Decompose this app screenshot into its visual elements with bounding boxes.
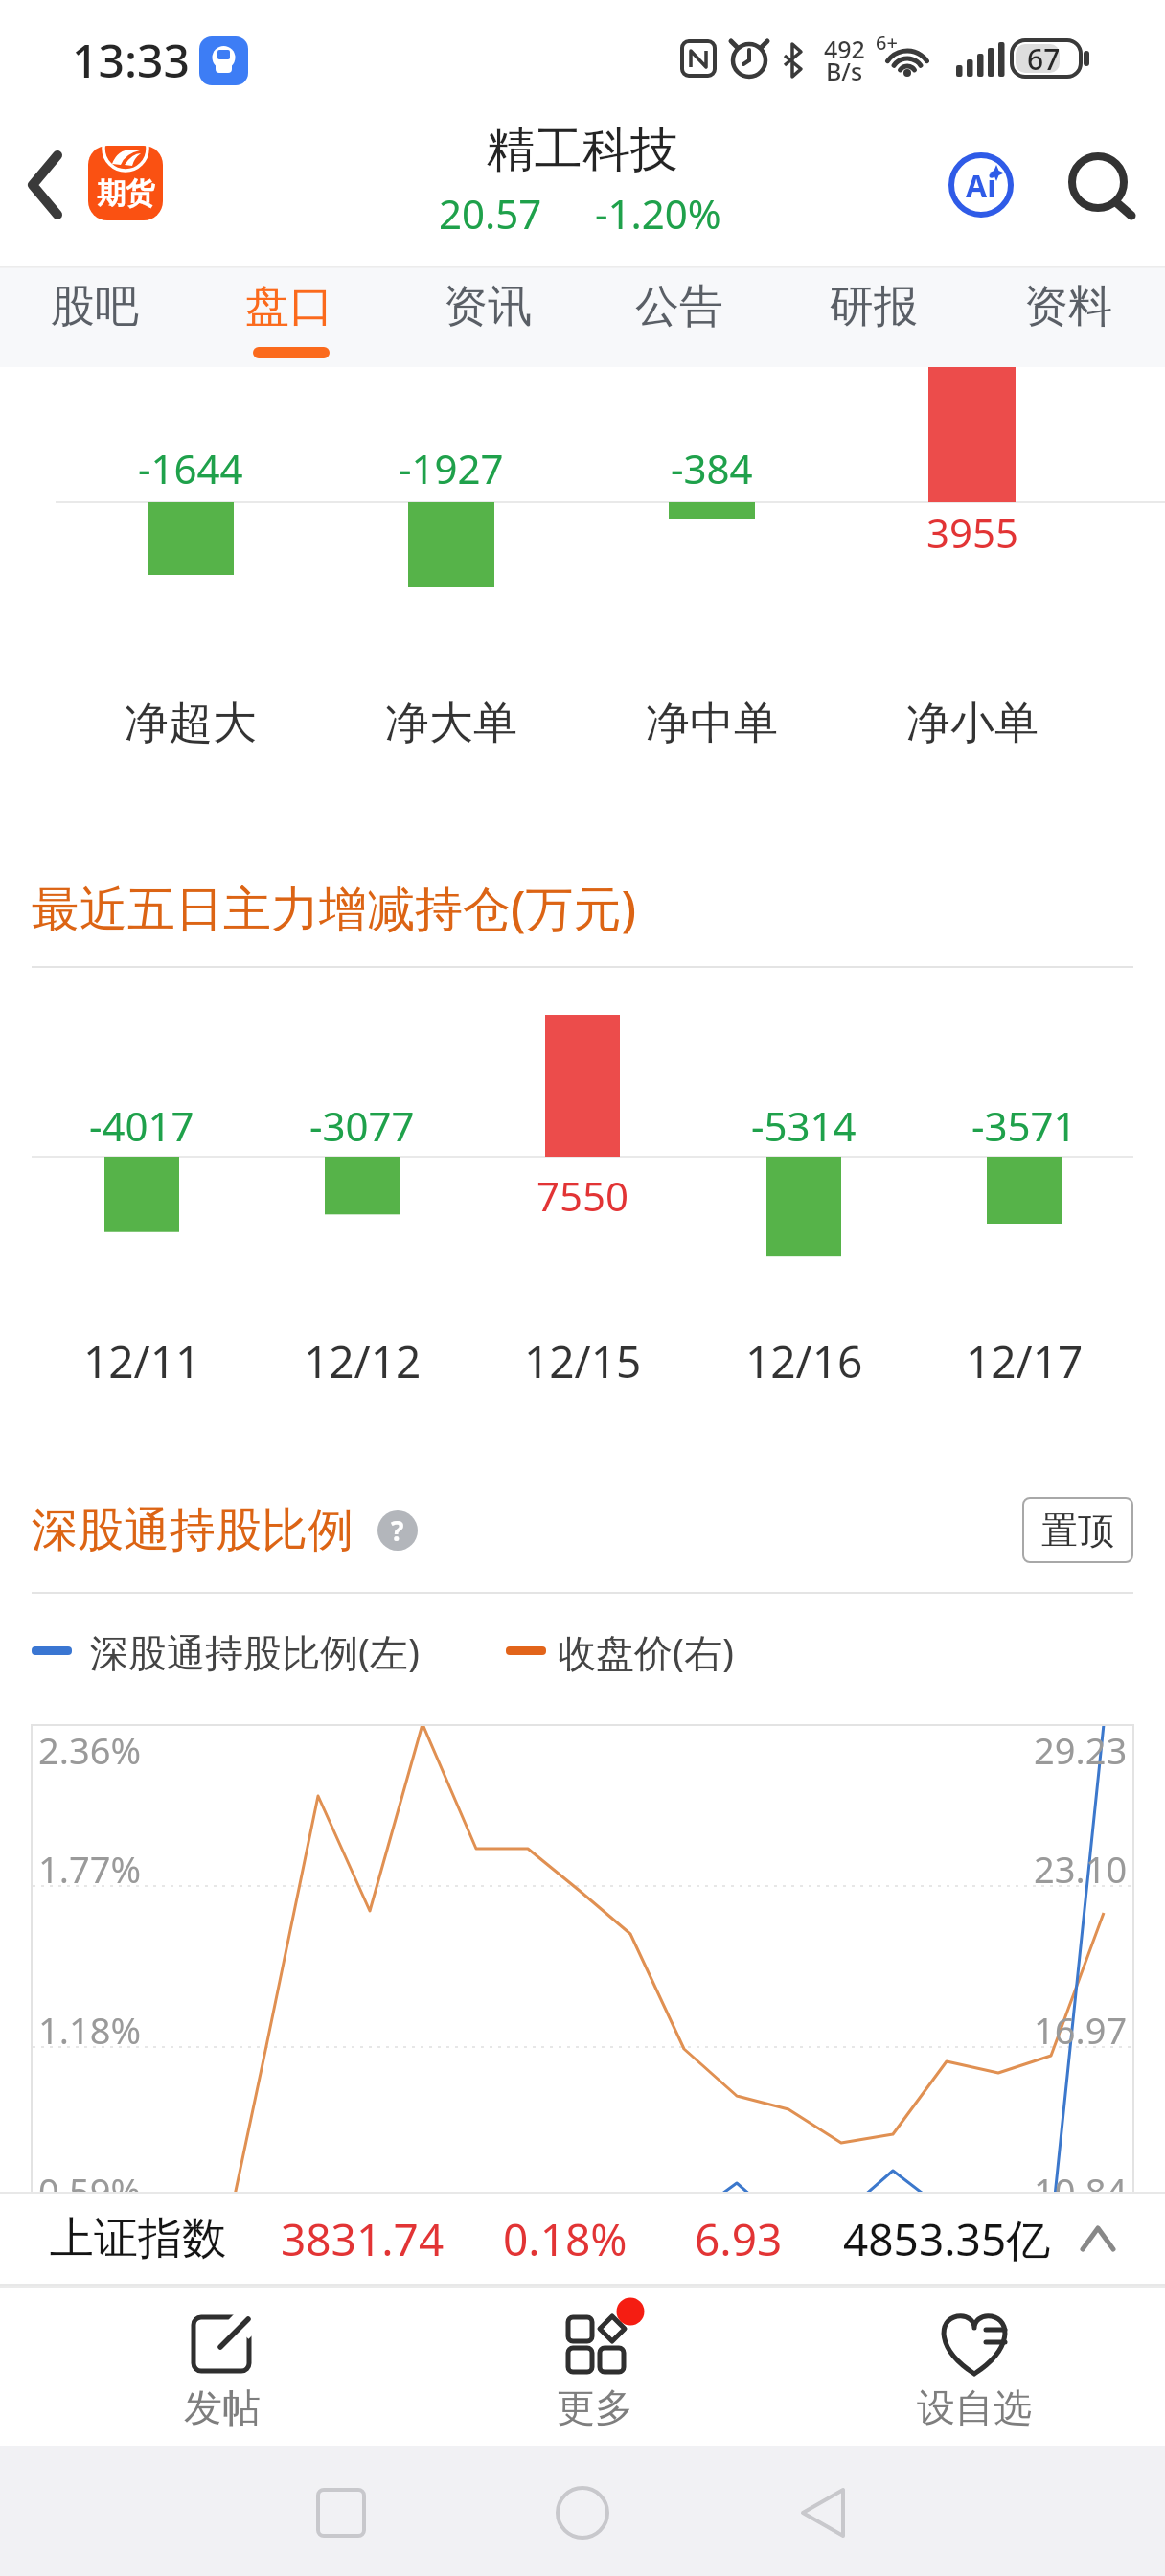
staticText: 净中单 <box>646 696 778 751</box>
staticText: 公告 <box>635 279 723 334</box>
button[interactable] <box>293 2465 389 2561</box>
staticText: -1927 <box>399 441 504 495</box>
staticText: 4853.35亿 <box>843 2209 1051 2269</box>
staticText: -384 <box>671 441 753 495</box>
staticText: 期货 <box>97 175 154 212</box>
staticText: 6.93 <box>695 2209 783 2269</box>
staticText: 置顶 <box>1041 1507 1114 1553</box>
staticText: ? <box>391 1512 404 1549</box>
staticText: 13:33 <box>72 29 190 91</box>
staticText: 净小单 <box>906 696 1039 751</box>
staticText: 深股通持股比例(左) <box>90 1625 420 1678</box>
staticText: 7550 <box>537 1168 629 1223</box>
staticText: -4017 <box>89 1098 194 1153</box>
button[interactable] <box>774 2465 870 2561</box>
staticText: 更多 <box>557 2383 633 2431</box>
staticText: 1.77% <box>38 1844 141 1894</box>
staticText: 研报 <box>830 279 918 334</box>
staticText: 收盘价(右) <box>558 1625 734 1678</box>
button[interactable]: 研报 <box>788 263 960 351</box>
staticText: 资料 <box>1024 279 1112 334</box>
staticText: 发帖 <box>184 2383 261 2431</box>
button[interactable]: 公告 <box>593 263 765 351</box>
staticText: 1.18% <box>38 2005 141 2055</box>
staticText: 最近五日主力增减持仓(万元) <box>32 875 637 940</box>
button[interactable]: 资讯 <box>401 263 574 351</box>
staticText: 67 <box>1027 39 1061 79</box>
staticText: -5314 <box>751 1098 857 1153</box>
staticText: 设自选 <box>917 2383 1032 2431</box>
staticText: 深股通持股比例 <box>32 1502 354 1559</box>
staticText: 2.36% <box>38 1725 141 1775</box>
staticText: 29.23 <box>1034 1725 1128 1775</box>
button[interactable]: 盘口 <box>203 263 376 351</box>
button[interactable]: 股吧 <box>9 263 181 351</box>
button[interactable] <box>535 2465 630 2561</box>
staticText: 盘口 <box>245 279 333 334</box>
staticText: 股吧 <box>51 279 139 334</box>
staticText: 3955 <box>926 505 1019 560</box>
staticText: 20.57 <box>439 186 542 241</box>
button[interactable]: 发帖 <box>126 2293 318 2442</box>
staticText: 16.97 <box>1034 2005 1128 2055</box>
staticText: -1.20% <box>595 186 721 241</box>
staticText: B/s <box>826 55 863 87</box>
staticText: 净超大 <box>125 696 257 751</box>
button[interactable]: Ai <box>948 155 1015 217</box>
staticText: 12/11 <box>83 1331 201 1391</box>
staticText: -3571 <box>971 1098 1077 1153</box>
button[interactable]: 置顶 <box>1022 1497 1133 1563</box>
staticText: 0.59% <box>38 2166 141 2216</box>
staticText: 12/15 <box>524 1331 642 1391</box>
staticText: 资讯 <box>444 279 532 334</box>
staticText: 精工科技 <box>487 120 678 180</box>
staticText: 12/12 <box>304 1331 422 1391</box>
staticText: 0.18% <box>503 2209 628 2269</box>
staticText: Ai <box>966 165 996 207</box>
staticText: -3077 <box>309 1098 415 1153</box>
staticText: 12/17 <box>966 1331 1084 1391</box>
button[interactable]: 资料 <box>982 263 1154 351</box>
button[interactable]: 更多 <box>499 2293 691 2442</box>
button[interactable]: 设自选 <box>879 2293 1070 2442</box>
staticText: 492 <box>824 33 865 65</box>
staticText: 净大单 <box>385 696 517 751</box>
staticText: 23.10 <box>1034 1844 1128 1894</box>
staticText: 上证指数 <box>50 2211 226 2266</box>
staticText: 6+ <box>876 30 898 56</box>
staticText: 10.84 <box>1034 2166 1128 2216</box>
staticText: 3831.74 <box>281 2209 445 2269</box>
staticText: 12/16 <box>745 1331 863 1391</box>
staticText: -1644 <box>138 441 243 495</box>
button[interactable]: 上证指数 <box>0 2192 1165 2286</box>
